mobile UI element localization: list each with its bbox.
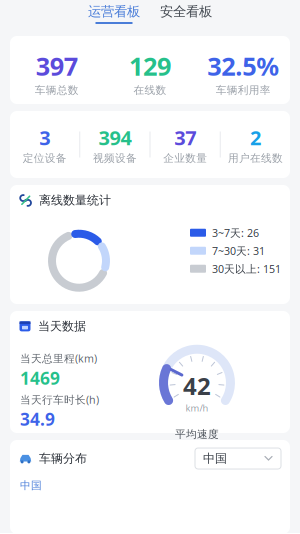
staticText: 车辆分布 [39,451,87,466]
staticText: 3 [39,124,50,151]
staticText: 2 [250,124,261,151]
staticText: 42 [183,370,211,402]
staticText: km/h [185,402,208,414]
staticText: 7~30天: 31 [212,244,265,258]
button[interactable]: 运营看板 [88,5,140,29]
staticText: 车辆总数 [35,84,79,97]
staticText: 当天数据 [38,319,86,334]
staticText: 34.9 [20,408,55,431]
staticText: 在线数 [133,84,166,97]
staticText: 32.5% [207,49,279,83]
staticText: 当天总里程(km) [20,351,97,365]
staticText: 1469 [20,366,60,389]
staticText: 129 [129,49,171,83]
button[interactable]: 安全看板 [160,5,212,29]
staticText: 30天以上: 151 [212,262,281,276]
staticText: 视频设备 [93,152,137,165]
staticText: 3~7天: 26 [212,226,259,240]
staticText: 平均速度 [175,428,219,441]
staticText: 离线数量统计 [39,193,111,208]
staticText: 定位设备 [23,152,67,165]
staticText: 394 [98,124,131,151]
staticText: 车辆利用率 [216,84,271,97]
staticText: 当天行车时长(h) [20,392,99,407]
staticText: 运营看板 [88,3,140,20]
button[interactable]: 中国 [195,448,281,469]
staticText: 397 [36,49,78,83]
staticText: 中国 [20,479,42,492]
staticText: 中国 [203,451,227,466]
staticText: 用户在线数 [228,152,283,165]
staticText: 37 [174,124,196,151]
staticText: 安全看板 [160,3,212,20]
staticText: 企业数量 [163,152,207,165]
